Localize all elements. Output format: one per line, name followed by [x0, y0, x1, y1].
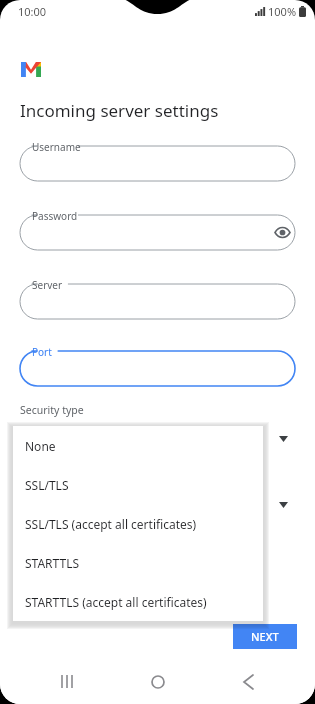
button[interactable]: Back [224, 659, 272, 704]
staticText: 100% [268, 4, 297, 19]
staticText: Server [32, 278, 63, 292]
button[interactable]: STARTTLS [13, 543, 263, 582]
button[interactable]: Username [20, 137, 295, 181]
staticText: Port [32, 345, 52, 359]
button[interactable]: Recents [43, 659, 91, 704]
button[interactable]: Show password [269, 219, 295, 245]
staticText: SSL/TLS (accept all certificates) [25, 516, 197, 532]
staticText: Security type [20, 403, 84, 417]
staticText: 10:00 [18, 4, 47, 19]
button[interactable]: SSL/TLS (accept all certificates) [13, 504, 263, 543]
staticText: STARTTLS (accept all certificates) [25, 594, 207, 610]
button[interactable]: Server [20, 275, 295, 319]
button[interactable]: STARTTLS (accept all certificates) [13, 582, 263, 621]
button[interactable]: Home [134, 659, 182, 704]
button[interactable]: Port [20, 342, 295, 386]
button[interactable]: Password [20, 206, 295, 250]
button[interactable]: NEXT [233, 624, 297, 649]
staticText: Username [32, 140, 81, 154]
staticText: SSL/TLS [25, 477, 69, 493]
staticText: STARTTLS [25, 555, 80, 571]
staticText: Incoming server settings [20, 99, 219, 122]
button[interactable]: None [13, 426, 263, 465]
staticText: None [25, 438, 56, 454]
staticText: Password [32, 209, 78, 223]
button[interactable]: SSL/TLS [13, 465, 263, 504]
staticText: NEXT [251, 629, 279, 644]
